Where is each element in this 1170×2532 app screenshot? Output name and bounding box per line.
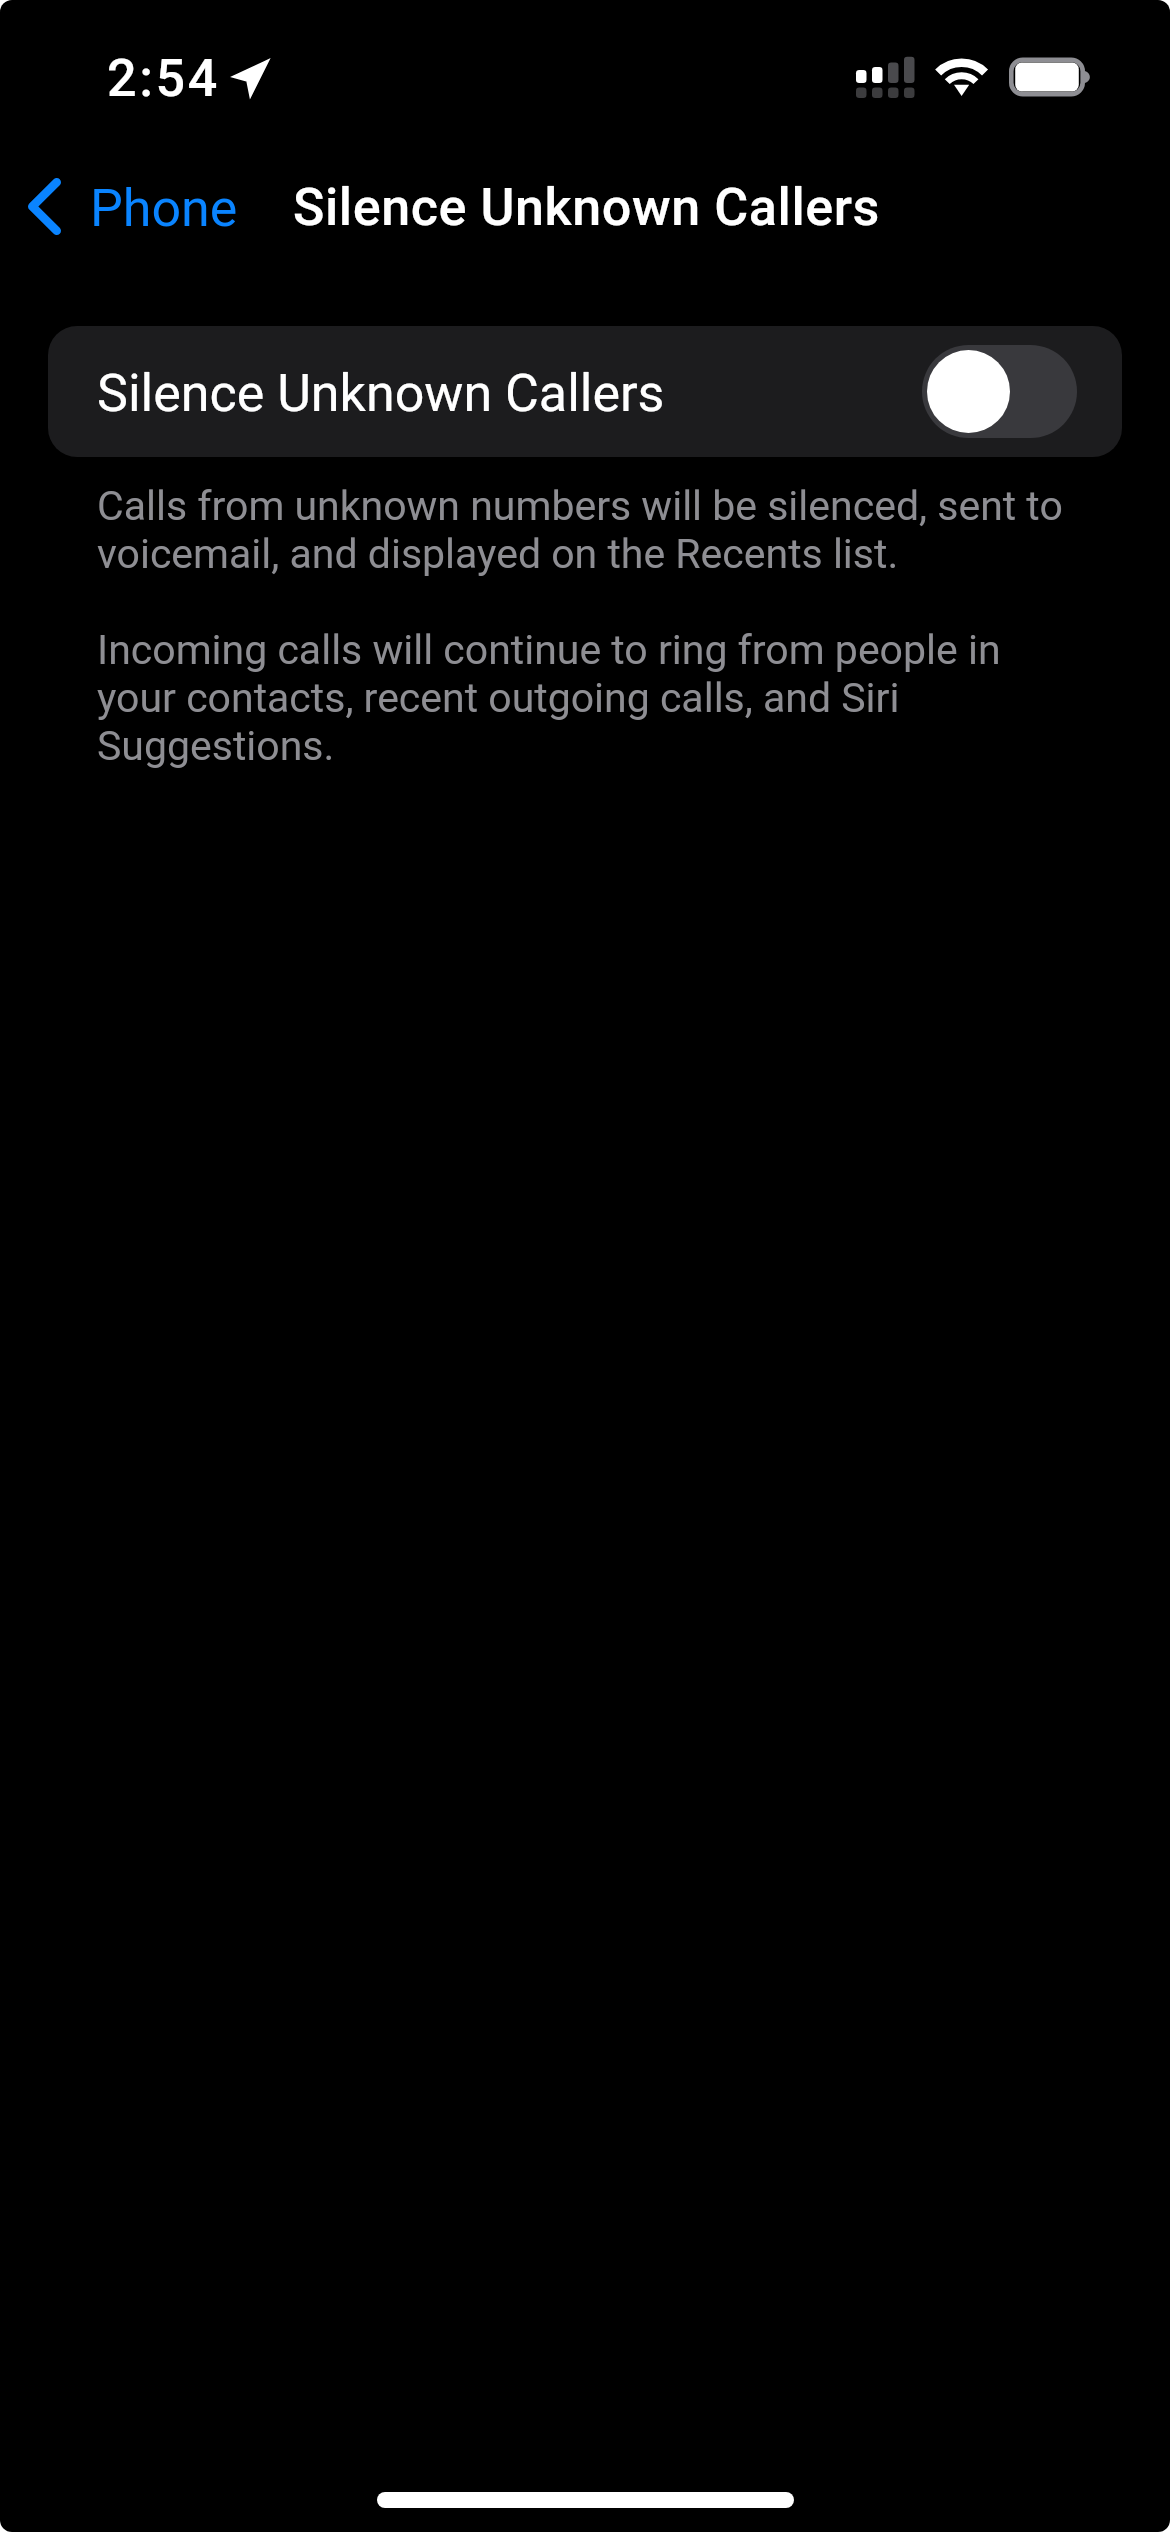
button[interactable]: Silence Unknown Callers toggle, off bbox=[922, 345, 1077, 438]
button[interactable]: Back to Phone bbox=[16, 166, 254, 248]
button[interactable]: Silence Unknown Callers bbox=[48, 326, 1122, 457]
staticText: Calls from unknown numbers will be silen… bbox=[97, 482, 1070, 578]
staticText: 2:54 bbox=[107, 50, 220, 108]
staticText: Silence Unknown Callers bbox=[97, 365, 665, 423]
staticText: Incoming calls will continue to ring fro… bbox=[97, 626, 1070, 770]
staticText: Silence Unknown Callers bbox=[293, 181, 881, 237]
staticText: Phone bbox=[90, 182, 238, 238]
